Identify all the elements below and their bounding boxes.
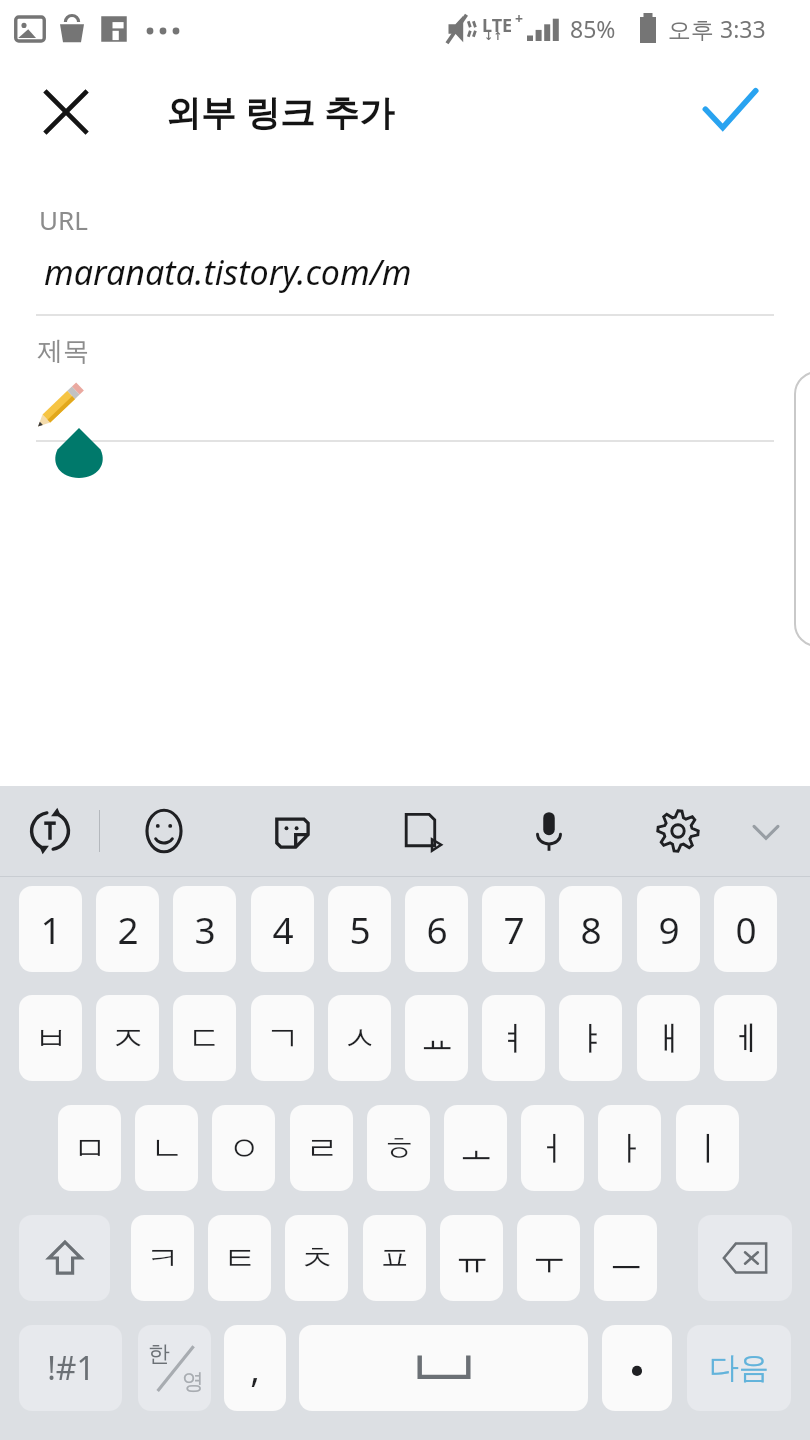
button[interactable]: Stickers: [255, 794, 329, 868]
button[interactable]: Shift: [19, 1215, 110, 1301]
button[interactable]: ㅇ: [212, 1105, 275, 1191]
button[interactable]: Emoji: [127, 794, 201, 868]
button[interactable]: ㅋ: [131, 1215, 194, 1301]
staticText: 영: [182, 1368, 204, 1396]
button[interactable]: ㅡ: [594, 1215, 657, 1301]
button[interactable]: 7: [482, 886, 545, 972]
button[interactable]: ㅜ: [517, 1215, 580, 1301]
staticText: 1: [40, 904, 62, 954]
staticText: ㅣ: [691, 1127, 725, 1170]
staticText: LTE: [482, 13, 513, 38]
button[interactable]: ㄴ: [135, 1105, 198, 1191]
staticText: 4: [272, 904, 294, 954]
staticText: ㅇ: [227, 1127, 261, 1170]
staticText: +: [515, 9, 524, 28]
button[interactable]: ㅐ: [637, 995, 700, 1081]
button[interactable]: Backspace: [698, 1215, 792, 1301]
button[interactable]: 6: [405, 886, 468, 972]
staticText: 오후 3:33: [668, 13, 766, 44]
button[interactable]: 5: [328, 886, 391, 972]
staticText: 외부 링크 추가: [166, 88, 395, 136]
button[interactable]: Korean English toggle: [138, 1325, 211, 1411]
button[interactable]: ㅅ: [328, 995, 391, 1081]
staticText: ㅐ: [652, 1017, 686, 1060]
button[interactable]: ㅂ: [19, 995, 82, 1081]
button[interactable]: ㅣ: [676, 1105, 739, 1191]
button[interactable]: ㅔ: [714, 995, 777, 1081]
button[interactable]: ㅕ: [482, 995, 545, 1081]
button[interactable]: Voice input: [512, 794, 586, 868]
button[interactable]: ㅍ: [363, 1215, 426, 1301]
staticText: 7: [503, 904, 525, 954]
button[interactable]: ,: [224, 1325, 286, 1411]
button[interactable]: 0: [714, 886, 777, 972]
staticText: 6: [426, 904, 448, 954]
staticText: 다음: [709, 1349, 769, 1387]
staticText: ㅎ: [382, 1127, 416, 1170]
button[interactable]: 8: [559, 886, 622, 972]
staticText: !#1: [47, 1346, 95, 1390]
button[interactable]: ㄹ: [290, 1105, 353, 1191]
staticText: ㅕ: [497, 1017, 531, 1060]
button[interactable]: ㅗ: [444, 1105, 507, 1191]
button[interactable]: GIF: [383, 794, 457, 868]
button[interactable]: 1: [19, 886, 82, 972]
staticText: ㅡ: [609, 1237, 643, 1280]
staticText: ㅜ: [532, 1237, 566, 1280]
button[interactable]: ㅌ: [208, 1215, 271, 1301]
staticText: ㅍ: [378, 1237, 412, 1280]
button[interactable]: Period: [602, 1325, 672, 1411]
button[interactable]: Close: [18, 64, 114, 160]
button[interactable]: Translate: [13, 794, 87, 868]
staticText: URL: [39, 202, 88, 237]
staticText: 한: [148, 1340, 170, 1368]
button[interactable]: ㅊ: [285, 1215, 348, 1301]
staticText: maranata.tistory.com/m: [44, 249, 412, 295]
staticText: ㅌ: [223, 1237, 257, 1280]
staticText: ㅏ: [613, 1127, 647, 1170]
staticText: ㅠ: [455, 1237, 489, 1280]
staticText: ㅑ: [574, 1017, 608, 1060]
staticText: ㄱ: [266, 1017, 300, 1060]
button[interactable]: !#1: [19, 1325, 122, 1411]
button[interactable]: Hide keyboard: [729, 794, 803, 868]
staticText: 3: [194, 904, 216, 954]
staticText: ㅔ: [729, 1017, 763, 1060]
staticText: ㄷ: [188, 1017, 222, 1060]
staticText: ㅅ: [343, 1017, 377, 1060]
staticText: ㅊ: [300, 1237, 334, 1280]
staticText: ㅈ: [111, 1017, 145, 1060]
staticText: ㅓ: [536, 1127, 570, 1170]
staticText: ㅗ: [459, 1127, 493, 1170]
button[interactable]: 3: [173, 886, 236, 972]
button[interactable]: Confirm: [682, 64, 778, 160]
staticText: ,: [250, 1344, 260, 1393]
staticText: ㄴ: [150, 1127, 184, 1170]
button[interactable]: Space: [299, 1325, 588, 1411]
button[interactable]: 2: [96, 886, 159, 972]
button[interactable]: ㅑ: [559, 995, 622, 1081]
button[interactable]: ㅠ: [440, 1215, 503, 1301]
staticText: ↓↑: [484, 30, 503, 43]
staticText: ㄹ: [305, 1127, 339, 1170]
staticText: 제목: [37, 335, 89, 368]
button[interactable]: Keyboard settings: [641, 794, 715, 868]
staticText: 8: [580, 904, 602, 954]
staticText: ㅂ: [34, 1017, 68, 1060]
button[interactable]: ㅛ: [405, 995, 468, 1081]
staticText: 5: [349, 904, 371, 954]
staticText: ㅛ: [420, 1017, 454, 1060]
staticText: ㅁ: [73, 1127, 107, 1170]
button[interactable]: ㅓ: [521, 1105, 584, 1191]
button[interactable]: ㄷ: [173, 995, 236, 1081]
button[interactable]: ㅎ: [367, 1105, 430, 1191]
button[interactable]: 4: [251, 886, 314, 972]
button[interactable]: ㅈ: [96, 995, 159, 1081]
button[interactable]: 다음: [687, 1325, 791, 1411]
button[interactable]: ㄱ: [251, 995, 314, 1081]
staticText: ㅋ: [146, 1237, 180, 1280]
button[interactable]: 9: [637, 886, 700, 972]
staticText: 0: [735, 904, 757, 954]
button[interactable]: ㅁ: [58, 1105, 121, 1191]
button[interactable]: ㅏ: [598, 1105, 661, 1191]
